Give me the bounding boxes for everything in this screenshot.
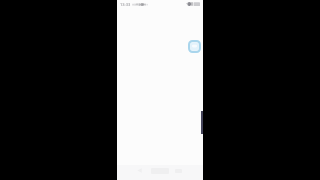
button[interactable]: Home xyxy=(150,166,170,176)
button[interactable]: Page content xyxy=(117,11,203,165)
button[interactable]: Recents xyxy=(174,166,183,175)
staticText: 13:33 xyxy=(120,2,131,7)
button[interactable]: Accessibility menu xyxy=(188,40,201,53)
